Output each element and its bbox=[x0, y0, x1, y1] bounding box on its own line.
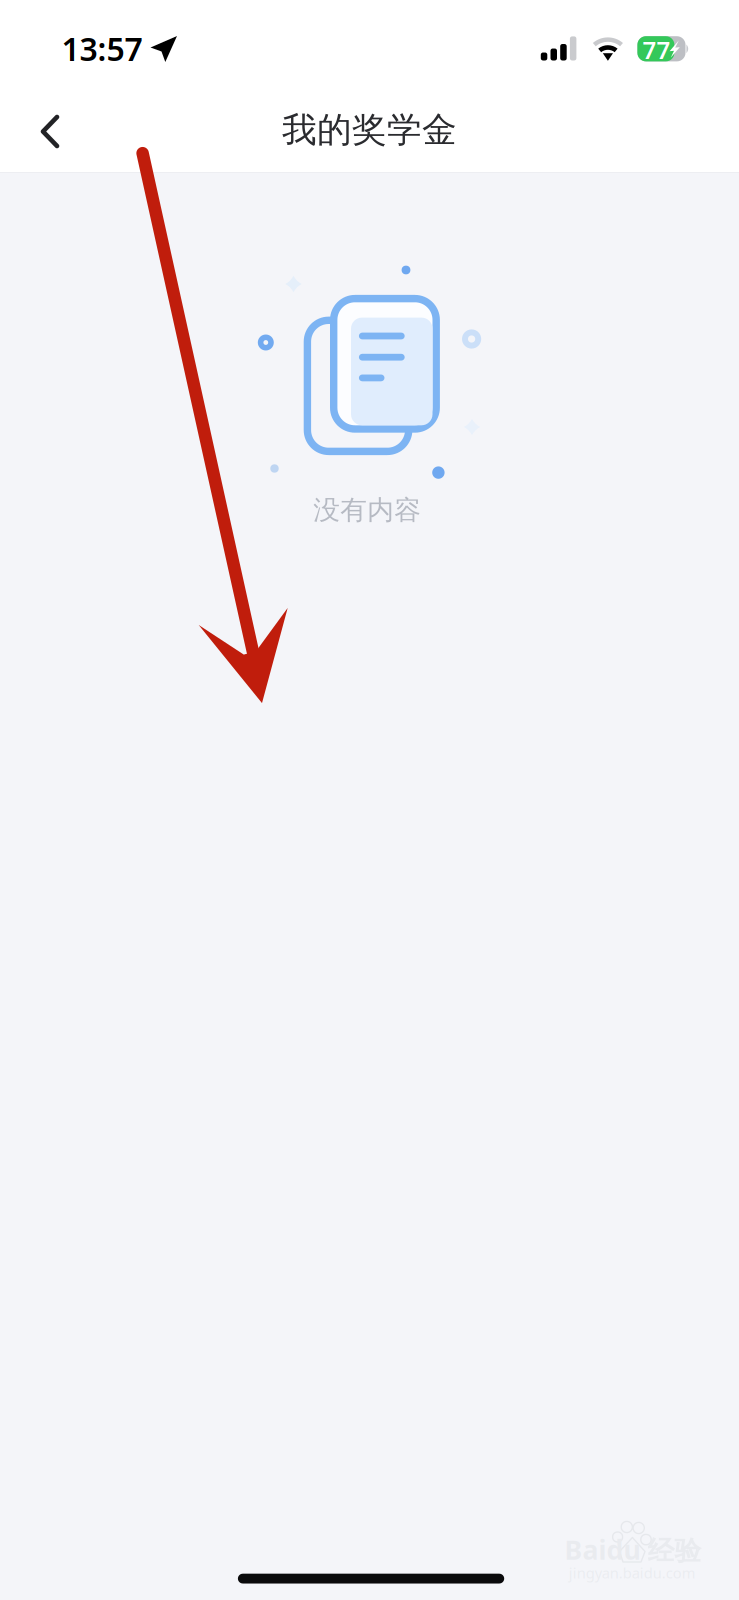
staticText: Baidu 经验 bbox=[564, 1532, 701, 1567]
button[interactable]: Back bbox=[15, 96, 85, 166]
staticText: 13:57 bbox=[61, 27, 142, 70]
staticText: 77 bbox=[643, 34, 671, 66]
staticText: 没有内容 bbox=[313, 494, 421, 526]
staticText: 我的奖学金 bbox=[282, 109, 457, 151]
